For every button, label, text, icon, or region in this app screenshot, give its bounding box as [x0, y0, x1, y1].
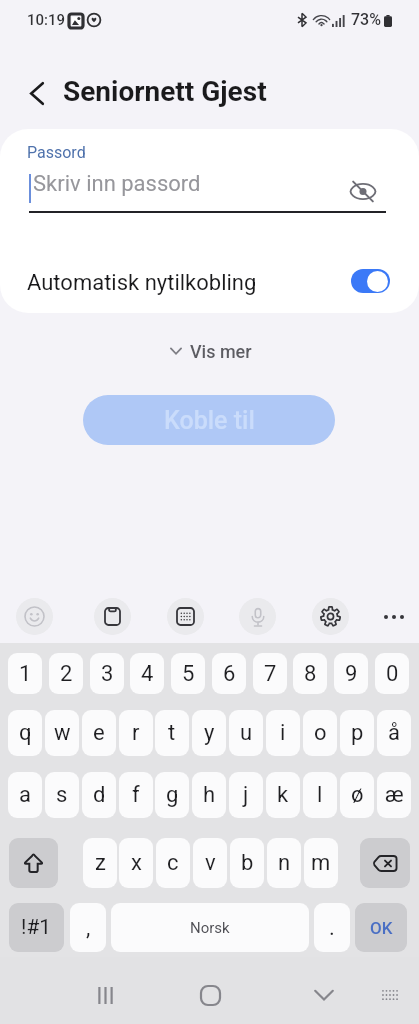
button[interactable]: Hide keyboard: [300, 971, 348, 1019]
button[interactable]: w: [45, 710, 79, 756]
button[interactable]: d: [82, 772, 116, 818]
staticText: e: [93, 720, 105, 746]
staticText: h: [203, 782, 216, 808]
staticText: 8: [304, 661, 317, 687]
button[interactable]: Norsk: [111, 903, 309, 952]
button[interactable]: Clipboard: [94, 598, 131, 635]
button[interactable]: More options: [375, 598, 412, 635]
staticText: u: [240, 720, 253, 746]
staticText: 0: [386, 661, 399, 687]
button[interactable]: j: [229, 772, 263, 818]
button[interactable]: 7: [253, 653, 287, 694]
button[interactable]: s: [45, 772, 79, 818]
button[interactable]: Keyboard modes: [167, 598, 204, 635]
button[interactable]: 8: [293, 653, 327, 694]
button[interactable]: 1: [8, 653, 42, 694]
button[interactable]: Shift: [9, 838, 58, 888]
button[interactable]: Show password: [347, 175, 379, 207]
staticText: r: [132, 720, 140, 746]
button[interactable]: [0, 255, 419, 307]
staticText: å: [388, 720, 400, 746]
button[interactable]: k: [266, 772, 300, 818]
button[interactable]: Back: [20, 76, 54, 110]
staticText: j: [243, 782, 249, 808]
staticText: 4: [141, 661, 154, 687]
button[interactable]: Automatisk nytilkobling: [351, 269, 390, 293]
button[interactable]: 9: [334, 653, 368, 694]
button[interactable]: Home: [186, 971, 234, 1019]
staticText: p: [351, 720, 364, 746]
staticText: 9: [345, 661, 358, 687]
staticText: .: [329, 915, 335, 941]
button[interactable]: m: [304, 838, 338, 888]
staticText: æ: [385, 782, 404, 808]
button[interactable]: 0: [375, 653, 409, 694]
staticText: w: [54, 720, 71, 746]
button[interactable]: ,: [70, 903, 106, 952]
button[interactable]: 6: [212, 653, 246, 694]
button[interactable]: Recents: [81, 971, 129, 1019]
staticText: f: [132, 782, 140, 808]
staticText: 10:19: [27, 11, 66, 29]
staticText: 5: [182, 661, 195, 687]
staticText: Koble til: [164, 406, 255, 435]
staticText: !#1: [21, 915, 52, 940]
staticText: y: [204, 720, 215, 746]
button[interactable]: y: [192, 710, 226, 756]
button[interactable]: Settings: [312, 598, 349, 635]
button[interactable]: a: [8, 772, 42, 818]
staticText: c: [167, 850, 179, 876]
button[interactable]: l: [303, 772, 337, 818]
button[interactable]: æ: [377, 772, 411, 818]
button[interactable]: 2: [49, 653, 83, 694]
staticText: q: [19, 720, 32, 746]
button[interactable]: Emoji: [16, 598, 53, 635]
button[interactable]: 3: [90, 653, 124, 694]
button[interactable]: 4: [130, 653, 164, 694]
button[interactable]: r: [119, 710, 153, 756]
staticText: a: [19, 782, 31, 808]
staticText: Norsk: [190, 919, 230, 937]
staticText: k: [277, 782, 289, 808]
staticText: 3: [101, 661, 114, 687]
button[interactable]: c: [156, 838, 190, 888]
button[interactable]: .: [314, 903, 350, 952]
staticText: x: [131, 850, 142, 876]
staticText: b: [241, 850, 254, 876]
button[interactable]: q: [8, 710, 42, 756]
button[interactable]: z: [83, 838, 117, 888]
staticText: n: [278, 850, 291, 876]
staticText: g: [166, 782, 179, 808]
staticText: t: [168, 720, 176, 746]
staticText: ø: [351, 782, 364, 808]
staticText: ,: [86, 915, 91, 941]
staticText: Passord: [27, 143, 86, 162]
button[interactable]: 5: [171, 653, 205, 694]
button[interactable]: OK: [355, 903, 407, 952]
button[interactable]: ø: [340, 772, 374, 818]
button[interactable]: Vis mer: [160, 336, 262, 366]
staticText: 6: [223, 661, 236, 687]
button[interactable]: e: [82, 710, 116, 756]
button[interactable]: Switch keyboard: [366, 971, 414, 1019]
button[interactable]: o: [303, 710, 337, 756]
staticText: v: [205, 850, 216, 876]
button[interactable]: b: [230, 838, 264, 888]
button[interactable]: Backspace: [360, 838, 410, 888]
button[interactable]: g: [155, 772, 189, 818]
button[interactable]: Symbols: [9, 903, 64, 952]
button[interactable]: f: [119, 772, 153, 818]
button[interactable]: n: [267, 838, 301, 888]
button[interactable]: i: [266, 710, 300, 756]
button[interactable]: u: [229, 710, 263, 756]
button[interactable]: å: [377, 710, 411, 756]
button[interactable]: Voice input: [239, 598, 276, 635]
staticText: z: [95, 850, 106, 876]
button[interactable]: x: [119, 838, 153, 888]
button[interactable]: t: [155, 710, 189, 756]
button[interactable]: p: [340, 710, 374, 756]
button[interactable]: v: [193, 838, 227, 888]
button[interactable]: h: [192, 772, 226, 818]
staticText: Seniornett Gjest: [63, 75, 267, 108]
button[interactable]: Koble til: [83, 395, 335, 445]
